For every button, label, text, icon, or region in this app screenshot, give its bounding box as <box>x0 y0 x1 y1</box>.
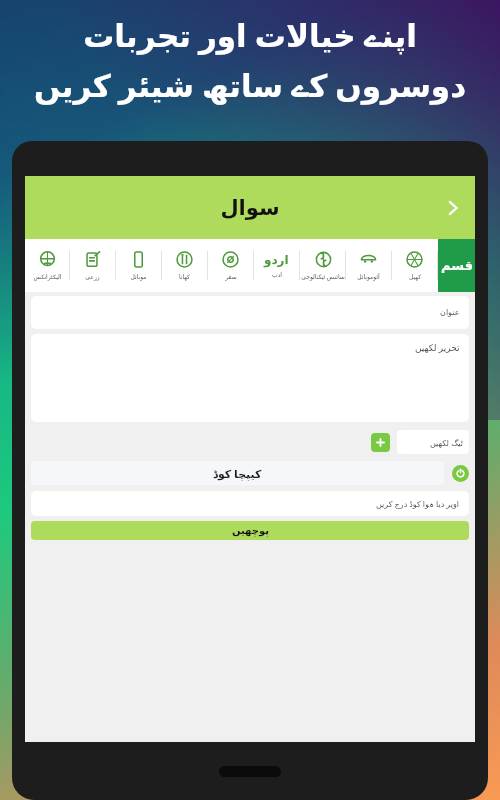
staticText: عنوان <box>440 308 460 317</box>
button[interactable]: عنوان <box>31 296 469 329</box>
staticText: دوسروں کے ساتھ شیئر کریں <box>18 64 482 106</box>
button[interactable]: الیکٹرانکس <box>25 239 69 292</box>
staticText: اوپر دیا ہوا کوڈ درج کریں <box>376 498 460 509</box>
button[interactable]: موبائل <box>116 239 161 292</box>
staticText: الیکٹرانکس <box>33 273 62 280</box>
staticText: موبائل <box>130 273 147 280</box>
staticText: آٹوموبائل <box>357 273 380 280</box>
button[interactable]: سائنس ٹیکنالوجی <box>300 239 345 292</box>
button[interactable]: Add tag <box>371 433 390 452</box>
staticText: کیپچا کوڈ <box>213 466 262 481</box>
button[interactable]: سفر <box>208 239 253 292</box>
staticText: سوال <box>25 196 475 220</box>
button[interactable]: کھیل <box>392 239 437 292</box>
staticText: زرعی <box>85 273 100 280</box>
button[interactable]: کھانا <box>162 239 207 292</box>
button[interactable]: کیپچا کوڈ <box>31 461 444 485</box>
button[interactable]: آٹوموبائل <box>346 239 391 292</box>
staticText: تحریر لکھیں <box>415 341 460 353</box>
staticText: کھیل <box>409 273 421 280</box>
staticText: کھانا <box>179 273 190 280</box>
staticText: ادب <box>272 271 282 278</box>
staticText: پوچھیں <box>232 525 269 537</box>
button[interactable]: اردو <box>254 239 299 292</box>
staticText: اپنے خیالات اور تجربات <box>18 14 482 56</box>
button[interactable]: Refresh captcha <box>452 465 469 482</box>
button[interactable]: پوچھیں <box>31 521 469 540</box>
button[interactable]: قسم <box>438 239 475 292</box>
button[interactable]: Next <box>431 186 475 230</box>
button[interactable]: زرعی <box>70 239 115 292</box>
staticText: اردو <box>264 253 289 267</box>
staticText: قسم <box>441 258 473 273</box>
staticText: سفر <box>225 273 237 280</box>
button[interactable]: تحریر لکھیں <box>31 334 469 422</box>
staticText: سائنس ٹیکنالوجی <box>301 273 345 281</box>
button[interactable]: ٹیگ لکھیں <box>397 430 469 454</box>
staticText: ٹیگ لکھیں <box>430 437 463 448</box>
button[interactable]: اوپر دیا ہوا کوڈ درج کریں <box>31 491 469 516</box>
